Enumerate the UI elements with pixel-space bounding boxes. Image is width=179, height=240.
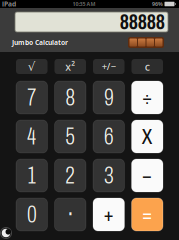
button[interactable]: + bbox=[93, 198, 124, 231]
button[interactable]: 2 bbox=[54, 159, 86, 192]
button[interactable]: 6 bbox=[93, 120, 124, 153]
button[interactable]: 5 bbox=[54, 120, 86, 153]
staticText: 6 bbox=[104, 123, 113, 149]
staticText: 0 bbox=[27, 201, 36, 227]
staticText: = bbox=[142, 202, 153, 227]
button[interactable]: 1 bbox=[16, 159, 47, 192]
button[interactable]: 4 bbox=[16, 120, 47, 153]
button[interactable]: √ bbox=[16, 59, 47, 74]
staticText: √ bbox=[28, 60, 36, 73]
staticText: 5 bbox=[65, 123, 75, 149]
staticText: 4 bbox=[27, 123, 36, 149]
button[interactable]: 3 bbox=[93, 159, 124, 192]
staticText: Jumbo Calculator bbox=[12, 38, 68, 47]
button[interactable]: = bbox=[131, 198, 163, 231]
staticText: 7 bbox=[28, 84, 36, 110]
button[interactable]: 7 bbox=[16, 81, 47, 114]
button[interactable]: 9 bbox=[93, 81, 124, 114]
button[interactable]: ÷ bbox=[131, 81, 163, 114]
staticText: iPad bbox=[2, 0, 16, 8]
staticText: − bbox=[142, 163, 153, 188]
button[interactable]: Home bbox=[0, 226, 12, 239]
button[interactable]: x² bbox=[54, 59, 86, 74]
staticText: x² bbox=[65, 59, 75, 74]
button[interactable]: +/− bbox=[93, 59, 124, 74]
staticText: 1 bbox=[28, 162, 36, 188]
staticText: +/− bbox=[102, 60, 116, 73]
staticText: + bbox=[103, 202, 114, 227]
button[interactable]: Skin bbox=[128, 37, 164, 48]
button[interactable]: 0 bbox=[16, 198, 47, 231]
staticText: 10:35 AM bbox=[72, 0, 95, 8]
button[interactable]: − bbox=[131, 159, 163, 192]
button[interactable]: 8 bbox=[54, 81, 86, 114]
button[interactable]: · bbox=[54, 198, 86, 231]
staticText: 8 bbox=[66, 84, 75, 110]
button[interactable]: c bbox=[131, 59, 163, 74]
staticText: X bbox=[142, 124, 153, 149]
staticText: ÷ bbox=[142, 85, 153, 110]
staticText: 9 bbox=[104, 84, 113, 110]
staticText: c bbox=[145, 59, 150, 74]
staticText: 3 bbox=[104, 162, 113, 188]
staticText: · bbox=[67, 198, 73, 230]
staticText: 2 bbox=[65, 162, 75, 188]
button[interactable]: X bbox=[131, 120, 163, 153]
staticText: 88888 bbox=[120, 10, 165, 34]
staticText: 96% bbox=[152, 0, 163, 8]
